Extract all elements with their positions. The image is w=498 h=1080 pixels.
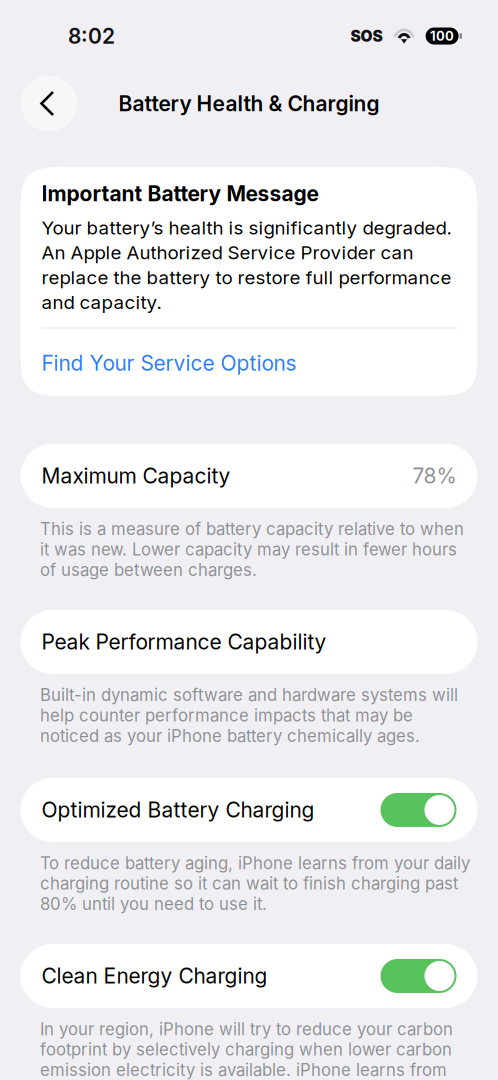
staticText: In your region, iPhone will try to reduc… <box>40 1019 453 1080</box>
staticText: Maximum Capacity <box>41 463 230 489</box>
staticText: Important Battery Message <box>41 181 318 206</box>
button[interactable]: Clean Energy Charging <box>20 944 477 1008</box>
button[interactable]: Optimized Battery Charging <box>20 778 477 842</box>
staticText: Find Your Service Options <box>41 350 296 376</box>
staticText: To reduce battery aging, iPhone learns f… <box>40 853 470 914</box>
button[interactable]: Back <box>21 75 77 131</box>
staticText: Peak Performance Capability <box>41 629 326 655</box>
staticText: Clean Energy Charging <box>41 963 267 989</box>
button[interactable]: Find Your Service Options <box>41 328 456 378</box>
staticText: Optimized Battery Charging <box>41 797 314 823</box>
staticText: This is a measure of battery capacity re… <box>40 519 464 580</box>
button[interactable]: Peak Performance Capability <box>20 610 477 674</box>
staticText: 100 <box>430 28 454 44</box>
staticText: 78% <box>412 463 456 489</box>
staticText: Battery Health & Charging <box>118 91 379 116</box>
staticText: Your battery’s health is significantly d… <box>41 216 451 313</box>
button[interactable]: Maximum Capacity <box>20 444 477 508</box>
staticText: SOS <box>351 27 383 45</box>
staticText: Built-in dynamic software and hardware s… <box>40 685 458 746</box>
staticText: 8:02 <box>68 23 115 49</box>
